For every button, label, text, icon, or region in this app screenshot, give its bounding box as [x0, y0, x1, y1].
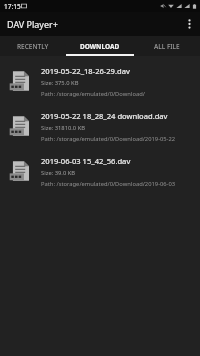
staticText: 2019-06-03 15_42_56.dav: [41, 156, 131, 166]
button[interactable]: 2019-05-22 18_28_24 download.dav: [0, 104, 200, 149]
staticText: DAV Player+: [7, 18, 58, 30]
staticText: 2019-05-22 18_28_24 download.dav: [41, 111, 168, 121]
staticText: Size: 39.0 KB: [41, 169, 76, 177]
staticText: DOWNLOAD: [80, 42, 120, 51]
staticText: 2019-05-22_18-26-29.dav: [41, 66, 130, 76]
staticText: Path: /storage/emulated/0/Download/2019-…: [41, 180, 176, 188]
staticText: Path: /storage/emulated/0/Download/2019-…: [41, 135, 176, 143]
button[interactable]: 2019-05-22_18-26-29.dav: [0, 59, 200, 104]
staticText: Size: 31810.0 KB: [41, 124, 86, 132]
button[interactable]: 2019-06-03 15_42_56.dav: [0, 149, 200, 194]
staticText: 17:15: [4, 2, 21, 11]
staticText: ALL FILE: [154, 42, 180, 51]
staticText: Path: /storage/emulated/0/Download/: [41, 90, 145, 98]
staticText: RECENTLY: [17, 42, 49, 51]
button[interactable]: ALL FILE: [133, 36, 200, 56]
button[interactable]: RECENTLY: [0, 36, 66, 56]
staticText: Size: 375.0 KB: [41, 79, 79, 87]
button[interactable]: DOWNLOAD: [66, 36, 133, 56]
button[interactable]: More options: [178, 12, 200, 36]
